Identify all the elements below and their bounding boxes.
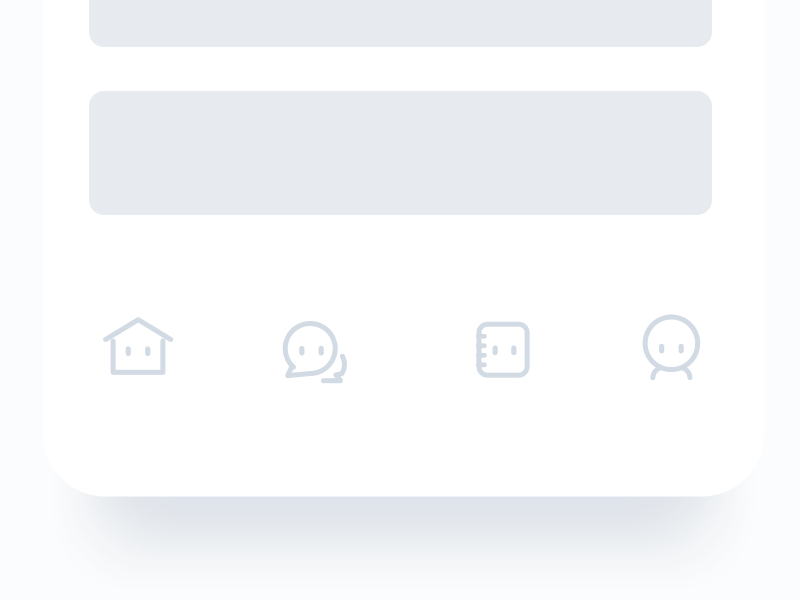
button[interactable]: Home	[53, 296, 223, 396]
button[interactable]: Profile	[585, 296, 755, 396]
button[interactable]: Messages	[229, 296, 399, 396]
button[interactable]: Journal	[417, 296, 587, 396]
